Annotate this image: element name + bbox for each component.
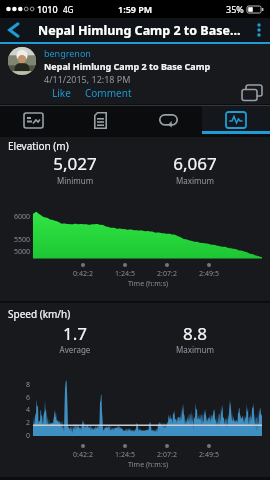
- staticText: Maximum: [155, 175, 235, 186]
- staticText: 4/11/2015, 12:18 PM: [44, 73, 131, 85]
- staticText: Nepal Himlung Camp 2 to Base Camp: [44, 60, 211, 72]
- staticText: Time (h:m:s): [108, 460, 188, 470]
- staticText: 5000: [6, 247, 30, 257]
- button[interactable]: Comment: [84, 85, 133, 101]
- staticText: Speed (km/h): [8, 307, 71, 321]
- button[interactable]: [67, 106, 134, 134]
- staticText: Like: [52, 86, 71, 100]
- staticText: 0:42:2: [63, 450, 103, 460]
- button[interactable]: [248, 18, 270, 42]
- staticText: 8: [6, 380, 30, 390]
- staticText: 2: [6, 418, 30, 428]
- button[interactable]: [240, 85, 264, 101]
- staticText: 1:59 PM: [118, 3, 153, 15]
- staticText: 1010: [37, 3, 58, 15]
- staticText: 2:49:5: [189, 269, 229, 279]
- staticText: 2:07:2: [147, 269, 187, 279]
- staticText: Nepal Himlung Camp 2 to Base...: [38, 22, 241, 39]
- staticText: 2:49:5: [189, 450, 229, 460]
- staticText: 1:24:5: [105, 269, 145, 279]
- staticText: 6000: [6, 212, 30, 222]
- staticText: Comment: [85, 86, 132, 100]
- staticText: 5500: [6, 235, 30, 245]
- button[interactable]: Like: [51, 85, 72, 101]
- staticText: Time (h:m:s): [108, 279, 188, 289]
- staticText: 4: [6, 405, 30, 415]
- staticText: Average: [35, 344, 115, 355]
- staticText: 35%: [226, 3, 244, 15]
- staticText: 0:42:2: [63, 269, 103, 279]
- staticText: Maximum: [155, 344, 235, 355]
- staticText: 1:24:5: [105, 450, 145, 460]
- staticText: 1.7: [15, 322, 135, 345]
- staticText: bengrenon: [44, 47, 91, 59]
- staticText: 5,027: [15, 152, 135, 175]
- button[interactable]: [134, 106, 202, 134]
- button[interactable]: [0, 106, 67, 134]
- button[interactable]: [0, 18, 26, 42]
- staticText: 0: [6, 431, 30, 441]
- staticText: Minimum: [35, 175, 115, 186]
- staticText: 6: [6, 393, 30, 403]
- staticText: 4G: [63, 4, 74, 15]
- staticText: 2:07:2: [147, 450, 187, 460]
- button[interactable]: [202, 106, 270, 134]
- staticText: 6,067: [135, 152, 255, 175]
- staticText: 8.8: [135, 322, 255, 345]
- staticText: Elevation (m): [8, 139, 69, 153]
